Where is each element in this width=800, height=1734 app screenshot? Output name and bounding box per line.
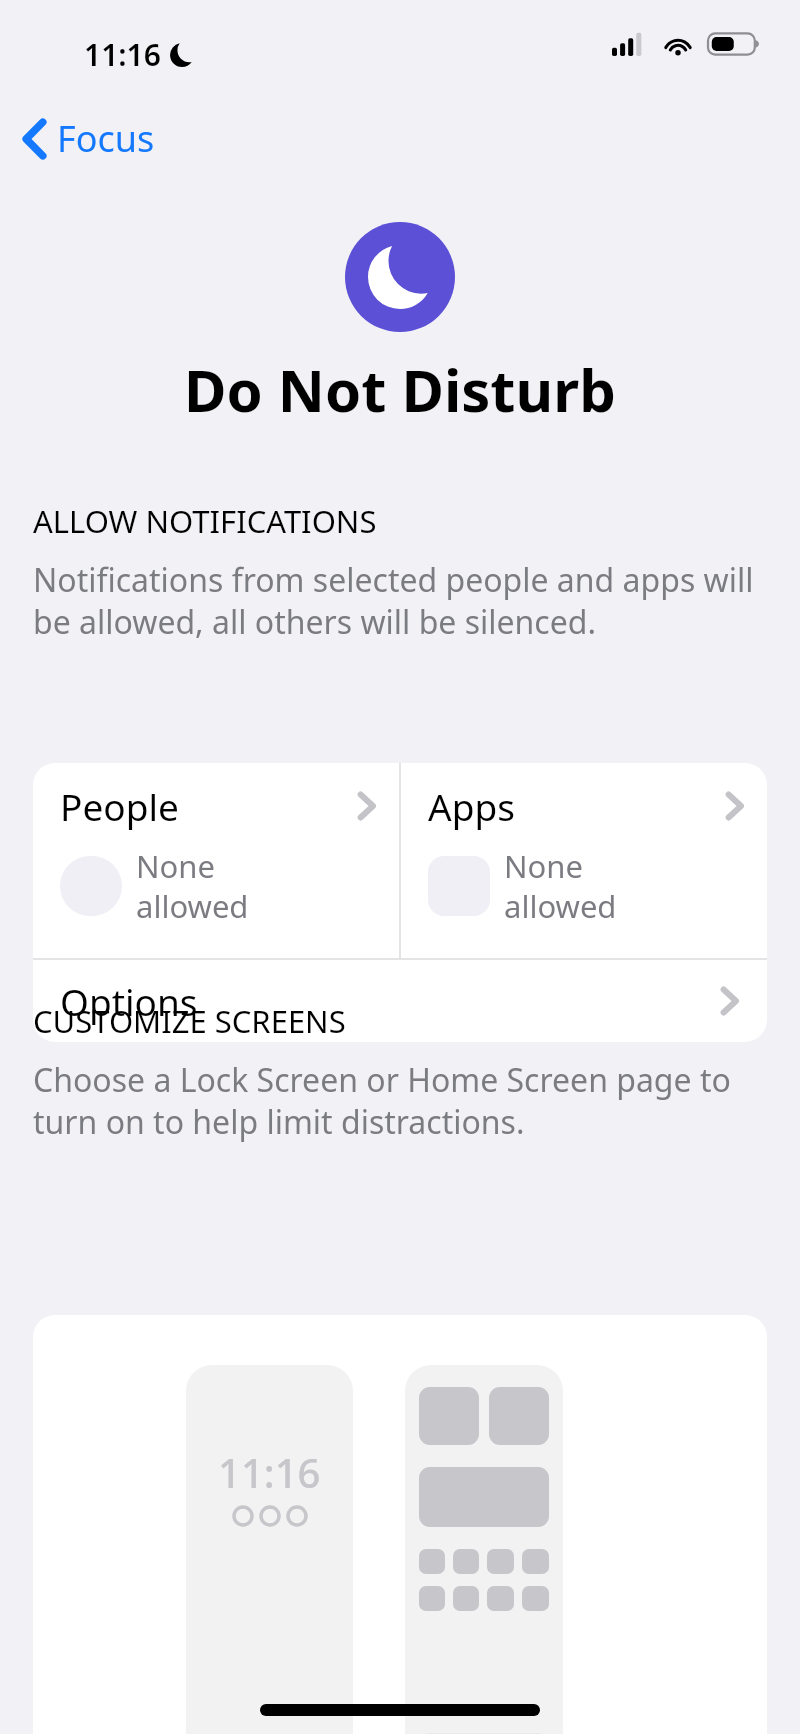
staticText: None allowed (136, 845, 249, 927)
button[interactable]: 11:16 (33, 1315, 767, 1734)
staticText: People (60, 781, 179, 831)
button[interactable]: Apps (401, 763, 767, 958)
staticText: None allowed (504, 845, 617, 927)
button[interactable]: Focus (14, 108, 163, 169)
button[interactable]: Options (33, 960, 767, 1042)
staticText: CUSTOMIZE SCREENS (33, 1000, 346, 1042)
staticText: Do Not Disturb (184, 350, 616, 429)
staticText: Apps (428, 781, 515, 831)
button[interactable]: People (33, 763, 399, 958)
staticText: Choose a Lock Screen or Home Screen page… (33, 1058, 767, 1143)
staticText: Notifications from selected people and a… (33, 558, 767, 643)
staticText: Options (60, 976, 198, 1026)
staticText: Focus (57, 114, 155, 163)
staticText: ALLOW NOTIFICATIONS (33, 500, 377, 542)
staticText: 11:16 (218, 1445, 321, 1499)
staticText: 11:16 (84, 34, 161, 75)
